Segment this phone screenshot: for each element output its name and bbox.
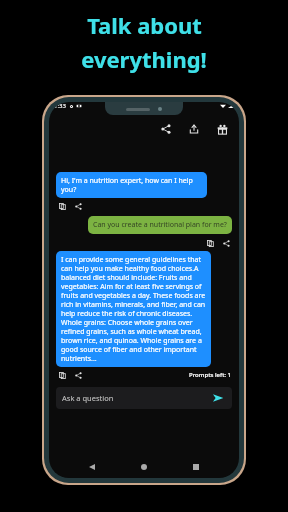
button[interactable]: Share message xyxy=(72,369,84,381)
button[interactable]: Copy xyxy=(56,200,68,212)
button[interactable]: Back xyxy=(83,458,101,476)
button[interactable]: Home xyxy=(135,458,153,476)
button[interactable]: Send xyxy=(210,390,226,406)
button[interactable]: I can provide some general guidelines th… xyxy=(56,251,211,367)
button[interactable]: Can you create a nutritional plan for me… xyxy=(88,216,232,234)
button[interactable]: Ask a question xyxy=(56,387,232,409)
staticText: Prompts left: 1 xyxy=(189,371,232,379)
button[interactable]: Share xyxy=(157,120,175,138)
staticText: Ask a question xyxy=(62,393,114,403)
staticText: Can you create a nutritional plan for me… xyxy=(93,220,227,230)
button[interactable]: Hi, I'm a nutrition expert, how can I he… xyxy=(56,172,207,198)
button[interactable]: Copy xyxy=(56,369,68,381)
button[interactable]: Upload xyxy=(185,120,203,138)
staticText: Hi, I'm a nutrition expert, how can I he… xyxy=(61,176,202,194)
button[interactable]: Gift xyxy=(213,120,231,138)
button[interactable]: Share message xyxy=(220,237,232,249)
button[interactable]: Share message xyxy=(72,200,84,212)
button[interactable]: Copy xyxy=(204,237,216,249)
staticText: I can provide some general guidelines th… xyxy=(61,255,206,363)
staticText: 1:33 xyxy=(54,102,66,110)
button[interactable]: Recents xyxy=(187,458,205,476)
staticText: Talk about xyxy=(87,10,202,40)
staticText: everything! xyxy=(81,44,207,74)
